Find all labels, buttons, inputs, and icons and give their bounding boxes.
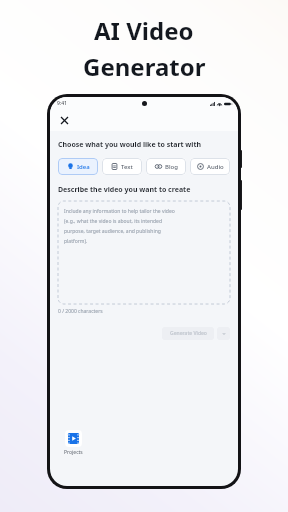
staticText: Projects xyxy=(64,449,83,456)
staticText: platform). xyxy=(64,238,88,245)
staticText: 0 / 2000 characters xyxy=(58,308,103,315)
staticText: Choose what you would like to start with xyxy=(58,140,202,150)
staticText: Describe the video you want to create xyxy=(58,185,191,195)
staticText: Include any information to help tailor t… xyxy=(64,208,175,215)
staticText: Text xyxy=(121,163,133,171)
staticText: Generate Video xyxy=(170,330,207,337)
staticText: purpose, target audience, and publishing xyxy=(64,228,161,235)
button[interactable]: More options xyxy=(217,327,230,340)
button[interactable]: Include any information to help tailor t… xyxy=(58,201,230,304)
staticText: Audio xyxy=(207,163,224,171)
button[interactable]: Blog xyxy=(146,158,186,175)
staticText: (e.g., what the video is about, its inte… xyxy=(64,218,162,225)
button[interactable]: Idea xyxy=(58,158,98,175)
staticText: Blog xyxy=(165,163,178,171)
button[interactable]: Text xyxy=(102,158,142,175)
staticText: 9:41 xyxy=(57,100,67,107)
button[interactable]: Generate Video xyxy=(162,327,214,340)
staticText: AI Video xyxy=(94,14,194,47)
button[interactable]: Audio xyxy=(190,158,230,175)
staticText: Idea xyxy=(77,163,90,171)
button[interactable]: Projects xyxy=(64,430,83,456)
button[interactable]: Close xyxy=(57,113,72,128)
staticText: Generator xyxy=(83,50,206,83)
